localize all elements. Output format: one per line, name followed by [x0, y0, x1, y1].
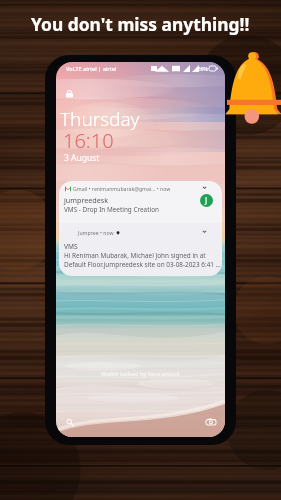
staticText: VMS	[64, 242, 78, 251]
staticText: VMS - Drop In Meeting Creation	[64, 205, 159, 214]
staticText: 16:10	[63, 127, 114, 154]
staticText: You don't miss anything!!	[31, 12, 250, 36]
staticText: Wallet locked by face unlock	[101, 370, 181, 378]
button[interactable]: Camera	[203, 414, 219, 430]
button[interactable]: Jumpree • now	[59, 223, 222, 276]
staticText: 3 August	[64, 152, 100, 164]
staticText: Hi Reniman Mubarak, Michael John signed …	[64, 251, 221, 269]
staticText: VoLTE airtel | airtel	[66, 65, 117, 72]
staticText: J	[205, 195, 208, 206]
button[interactable]: Gmail • renimanmubarak@gmai... • now	[59, 181, 222, 223]
staticText: 26%	[197, 65, 208, 72]
staticText: Thursday	[60, 106, 140, 132]
staticText: Jumpree • now	[78, 229, 114, 236]
button[interactable]: Flashlight	[62, 414, 78, 430]
staticText: jumpreedesk	[64, 195, 109, 205]
staticText: Gmail • renimanmubarak@gmai... • now	[73, 185, 171, 192]
